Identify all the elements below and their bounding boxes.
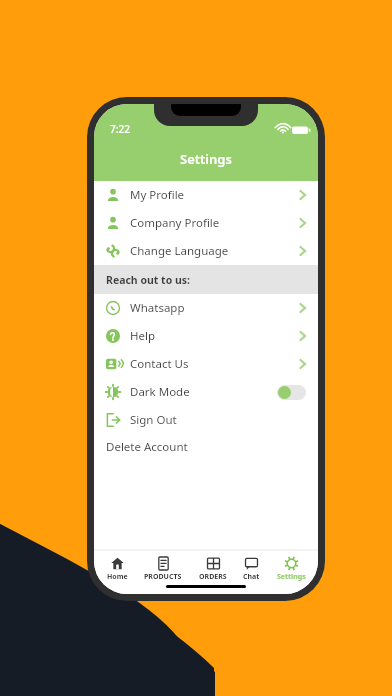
button[interactable]: Dark Mode — [94, 378, 318, 406]
staticText: Change Language — [130, 243, 229, 259]
staticText: 7:22 — [110, 122, 130, 136]
button[interactable]: Company Profile — [94, 209, 318, 237]
staticText: PRODUCTS — [144, 572, 182, 582]
button[interactable]: Delete Account — [94, 434, 318, 460]
staticText: Company Profile — [130, 215, 220, 231]
button[interactable]: Home — [103, 555, 132, 584]
button[interactable]: PRODUCTS — [140, 555, 186, 584]
button[interactable]: Settings — [273, 555, 310, 584]
staticText: Delete Account — [106, 439, 188, 455]
button[interactable]: ORDERS — [195, 555, 231, 584]
staticText: Sign Out — [130, 412, 177, 428]
staticText: Dark Mode — [130, 384, 190, 400]
button[interactable]: Contact Us — [94, 350, 318, 378]
button[interactable]: Change Language — [94, 237, 318, 265]
button[interactable]: Whatsapp — [94, 294, 318, 322]
staticText: Whatsapp — [130, 300, 185, 316]
button[interactable]: Help — [94, 322, 318, 350]
staticText: Settings — [277, 572, 306, 582]
button[interactable]: My Profile — [94, 181, 318, 209]
staticText: My Profile — [130, 187, 185, 203]
staticText: Help — [130, 328, 156, 344]
staticText: Reach out to us: — [106, 273, 190, 287]
button[interactable]: Chat — [239, 555, 264, 584]
staticText: ORDERS — [199, 572, 227, 582]
staticText: Chat — [243, 572, 260, 582]
button[interactable]: Sign Out — [94, 406, 318, 434]
staticText: Settings — [180, 150, 232, 168]
staticText: Home — [107, 572, 128, 582]
button[interactable] — [277, 385, 306, 400]
staticText: Contact Us — [130, 356, 189, 372]
